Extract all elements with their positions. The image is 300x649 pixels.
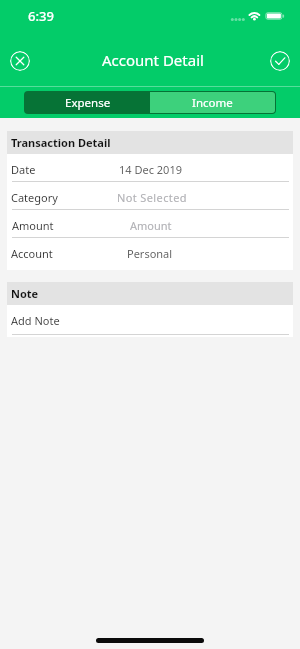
staticText: Transaction Detail [11,135,111,150]
button[interactable]: Expense [25,92,150,113]
staticText: Amount [130,218,172,233]
button[interactable]: Add Note [7,305,293,335]
staticText: Add Note [11,313,60,328]
staticText: Account Detail [102,50,204,70]
staticText: 14 Dec 2019 [119,162,182,177]
button[interactable]: Close [10,51,30,71]
button[interactable]: Date [7,154,293,182]
staticText: Amount [12,218,54,233]
button[interactable]: Account [7,238,293,266]
button[interactable]: Save [270,51,290,71]
button[interactable]: Category [7,182,293,210]
staticText: Expense [65,95,111,111]
staticText: Personal [127,246,173,261]
staticText: Income [192,95,233,111]
staticText: 6:39 [28,7,54,25]
staticText: Not Selected [117,190,187,205]
button[interactable]: Income [150,92,275,113]
staticText: Category [11,190,58,205]
staticText: Date [11,162,36,177]
button[interactable]: Amount [7,210,293,238]
staticText: Account [11,246,53,261]
staticText: Note [11,286,39,301]
